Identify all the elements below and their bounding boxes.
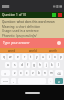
staticText: v — [32, 71, 34, 75]
staticText: w — [9, 55, 12, 59]
button[interactable]: y — [35, 54, 39, 60]
staticText: y — [36, 55, 38, 59]
button[interactable]: h — [38, 62, 42, 68]
staticText: Meaning: a short definition — [2, 25, 41, 29]
staticText: g — [33, 63, 35, 67]
staticText: k — [51, 63, 53, 67]
button[interactable]: ⇧ — [1, 70, 10, 76]
button[interactable]: v — [31, 70, 35, 76]
button[interactable]: ↵ — [55, 78, 63, 84]
button[interactable]: ?123 — [1, 78, 9, 84]
button[interactable]: u — [41, 54, 45, 60]
staticText: c — [26, 71, 28, 75]
staticText: ?123 — [3, 80, 8, 83]
staticText: p — [60, 55, 62, 59]
button[interactable]: q — [1, 54, 6, 60]
button[interactable]: . — [48, 78, 53, 84]
staticText: ⌫ — [57, 72, 61, 75]
button[interactable]: j — [44, 62, 48, 68]
button[interactable]: k — [50, 62, 54, 68]
staticText: word — [8, 49, 15, 53]
button[interactable]: word — [0, 48, 22, 53]
staticText: z — [14, 71, 16, 75]
staticText: t — [30, 55, 32, 59]
button[interactable]: i — [47, 54, 51, 60]
button[interactable]: o — [53, 54, 57, 60]
staticText: j — [46, 63, 47, 67]
staticText: Type your answer — [3, 41, 30, 45]
button[interactable]: Question 1 of 10 — [0, 12, 64, 18]
button[interactable]: x — [19, 70, 23, 76]
staticText: , — [13, 79, 14, 83]
button[interactable]: ⌫ — [55, 70, 63, 76]
staticText: s — [14, 63, 16, 67]
staticText: Usage: used in a sentence — [2, 29, 39, 33]
staticText: worth — [49, 49, 58, 53]
staticText: . — [50, 79, 51, 83]
button[interactable]: t — [29, 54, 33, 60]
button[interactable]: world — [22, 48, 43, 53]
button[interactable]: f — [26, 62, 30, 68]
button[interactable]: m — [49, 70, 53, 76]
staticText: i — [49, 55, 50, 59]
staticText: q — [3, 55, 5, 59]
button[interactable]: s — [12, 62, 17, 68]
staticText: Question: what does this word mean — [2, 20, 55, 24]
staticText: u — [42, 55, 44, 59]
staticText: d — [21, 63, 23, 67]
staticText: a — [7, 63, 9, 67]
button[interactable]: n — [43, 70, 47, 76]
button[interactable]: worth — [43, 48, 64, 53]
button[interactable]: , — [11, 78, 16, 84]
staticText: m — [50, 71, 53, 75]
staticText: l — [58, 63, 59, 67]
staticText: h — [39, 63, 41, 67]
staticText: ⇧ — [4, 72, 7, 75]
staticText: f — [27, 63, 29, 67]
button[interactable]: l — [56, 62, 60, 68]
staticText: Question 1 of 10 — [2, 13, 26, 17]
button[interactable]: a — [5, 62, 10, 68]
button[interactable]: e — [15, 54, 20, 60]
staticText: ↵ — [58, 80, 61, 83]
staticText: e — [17, 55, 19, 59]
button[interactable]: b — [37, 70, 41, 76]
button[interactable]: g — [32, 62, 36, 68]
button[interactable]: w — [8, 54, 13, 60]
staticText: b — [38, 71, 40, 75]
staticText: x — [20, 71, 22, 75]
staticText: o — [54, 55, 56, 59]
button[interactable]: z — [12, 70, 17, 76]
staticText: world — [29, 49, 37, 53]
staticText: r — [24, 55, 26, 59]
button[interactable]: Type your answer — [0, 38, 64, 48]
button[interactable]: p — [59, 54, 63, 60]
button[interactable]: Clear text — [57, 41, 61, 45]
staticText: n — [44, 71, 46, 75]
button[interactable]: r — [22, 54, 27, 60]
button[interactable]: d — [19, 62, 24, 68]
staticText: Phonetic: /prəˌnʌnsiˈeɪʃn/ — [2, 34, 37, 38]
button[interactable]: c — [25, 70, 29, 76]
